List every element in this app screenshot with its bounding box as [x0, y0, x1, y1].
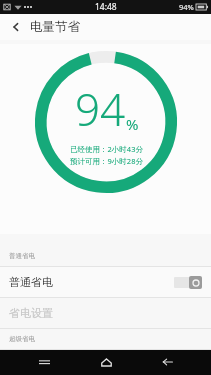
staticText: 普通省电: [9, 275, 53, 289]
staticText: %: [126, 114, 139, 134]
staticText: 电量节省: [30, 19, 80, 35]
button[interactable]: Menu: [27, 350, 61, 375]
button[interactable]: Home: [89, 350, 123, 375]
staticText: 14:48: [95, 1, 117, 13]
staticText: 省电设置: [9, 306, 53, 320]
staticText: 普通省电: [9, 252, 35, 260]
button[interactable]: Toggle 普通省电: [174, 276, 202, 289]
button[interactable]: 省电设置: [0, 298, 211, 328]
staticText: 94: [75, 79, 126, 139]
button[interactable]: 普通省电: [0, 267, 211, 297]
button[interactable]: Back: [150, 350, 184, 375]
staticText: 94%: [179, 2, 194, 12]
staticText: 预计可用：9小时28分: [70, 156, 143, 166]
button[interactable]: Back: [8, 19, 24, 35]
staticText: 已经使用：2小时43分: [70, 144, 143, 154]
staticText: 超级省电: [9, 335, 35, 343]
